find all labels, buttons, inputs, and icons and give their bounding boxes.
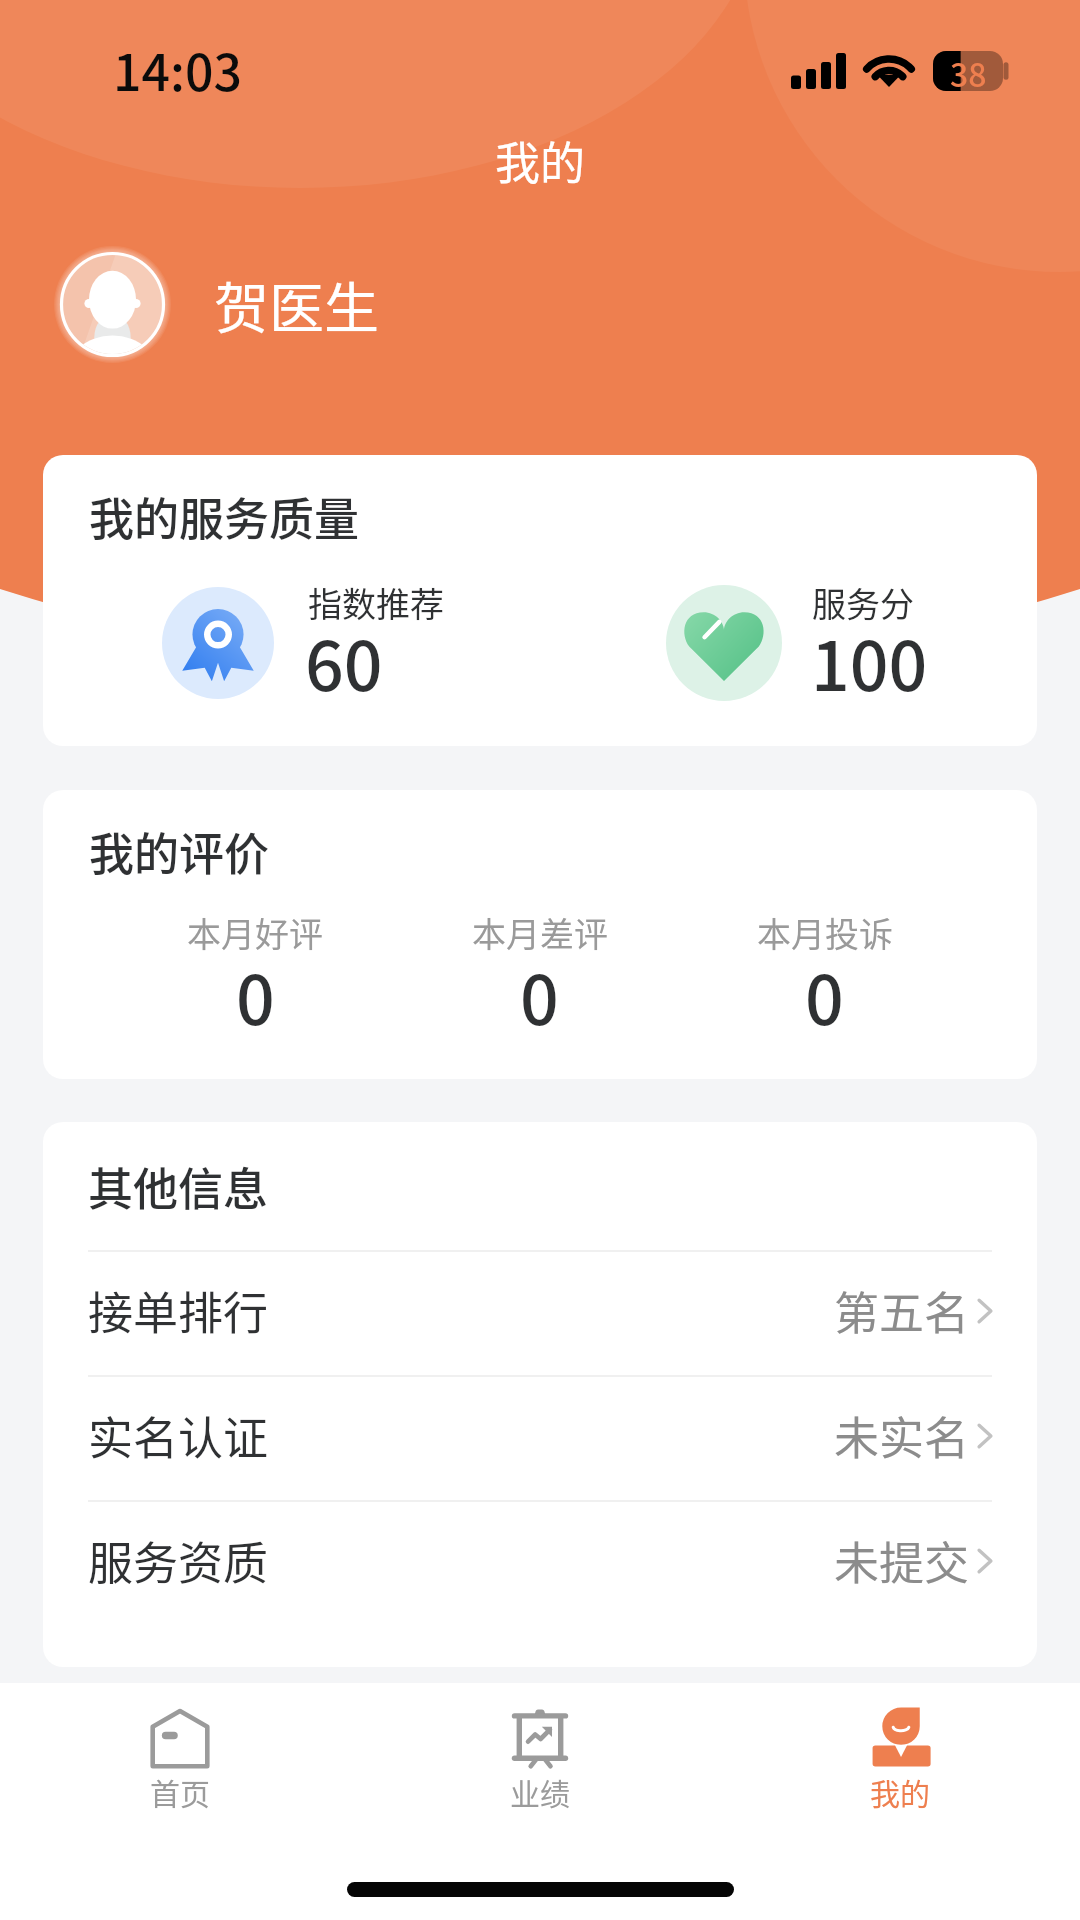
staticText: 指数推荐	[308, 578, 444, 627]
staticText: 第五名	[834, 1278, 970, 1343]
staticText: 100	[811, 612, 928, 710]
staticText: 接单排行	[88, 1278, 269, 1343]
button[interactable]	[153, 580, 523, 706]
staticText: 14:03	[113, 33, 242, 105]
staticText: 60	[305, 612, 383, 710]
staticText: 我的	[870, 1770, 930, 1813]
staticText: 服务资质	[88, 1528, 269, 1593]
staticText: 0	[805, 946, 844, 1044]
button[interactable]: 我的	[720, 1683, 1080, 1843]
staticText: 首页	[150, 1770, 210, 1813]
staticText: 未提交	[834, 1528, 970, 1593]
button[interactable]: 服务资质	[43, 1500, 1037, 1625]
staticText: 0	[520, 946, 559, 1044]
staticText: 服务分	[812, 578, 914, 627]
staticText: 实名认证	[88, 1403, 269, 1468]
button[interactable]: 实名认证	[43, 1375, 1037, 1500]
staticText: 0	[236, 946, 275, 1044]
staticText: 我的服务质量	[89, 484, 360, 549]
staticText: 38	[950, 50, 987, 90]
button[interactable]: 首页	[0, 1683, 360, 1843]
other: Battery 38 percent	[933, 51, 1008, 91]
staticText: 本月投诉	[757, 908, 893, 957]
staticText: 我的评价	[89, 819, 270, 884]
other: Mobile signal	[791, 53, 847, 89]
button[interactable]: 贺医生	[59, 240, 489, 370]
button[interactable]	[657, 580, 1027, 706]
button[interactable]: 接单排行	[43, 1250, 1037, 1375]
staticText: 未实名	[834, 1403, 970, 1468]
staticText: 其他信息	[88, 1154, 269, 1219]
staticText: 业绩	[510, 1770, 570, 1813]
button[interactable]: 业绩	[360, 1683, 720, 1843]
staticText: 本月好评	[187, 908, 323, 957]
other: Wi-Fi	[864, 49, 914, 87]
staticText: 贺医生	[214, 264, 380, 344]
staticText: 本月差评	[472, 908, 608, 957]
staticText: 我的	[495, 128, 586, 193]
